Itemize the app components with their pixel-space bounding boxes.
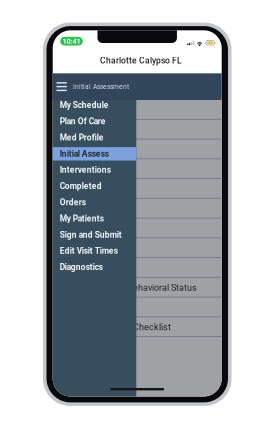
button[interactable]: Completed (53, 178, 136, 194)
button[interactable]: My Patients (53, 210, 136, 227)
button[interactable]: Diagnostics (53, 259, 136, 275)
staticText: Edit Visit Times (60, 246, 118, 256)
staticText: My Schedule (60, 100, 109, 110)
staticText: Initial Assess (60, 149, 109, 159)
staticText: Interventions (60, 165, 111, 175)
staticText: Sign and Submit (60, 230, 122, 240)
button[interactable]: Initial Assess (53, 146, 136, 162)
staticText: Prognosis (65, 223, 106, 234)
staticText: My Patients (60, 214, 104, 223)
button[interactable]: Med Profile (53, 129, 136, 146)
staticText: Vital Signs (65, 105, 107, 115)
button[interactable]: Menu (53, 73, 71, 100)
staticText: Plan Of Care (60, 116, 106, 126)
staticText: 10:41 (62, 37, 80, 45)
button[interactable]: Edit Visit Times (53, 243, 136, 259)
staticText: Sensory Status (65, 144, 125, 155)
button[interactable]: Safety Measures (53, 199, 222, 219)
staticText: Completed (60, 181, 102, 191)
button[interactable]: My Schedule (53, 97, 136, 113)
button[interactable]: Sanitation (53, 238, 222, 258)
button[interactable]: Vital Signs (53, 100, 222, 120)
staticText: Sanitation (65, 243, 105, 253)
staticText: Initial Assessment (73, 83, 129, 90)
button[interactable]: Equipment (53, 258, 222, 278)
staticText: Charlotte Calypso FL (100, 56, 182, 66)
button[interactable]: Sensory Status (53, 139, 222, 159)
staticText: Psychosocial / Behavioral Status (65, 282, 197, 293)
button[interactable]: Interventions (53, 162, 136, 178)
staticText: Diagnostics (60, 262, 103, 272)
button[interactable]: Plan Of Care (53, 113, 136, 129)
button[interactable]: Supervisory Visit Checklist (53, 317, 222, 337)
staticText: Pain Profile (65, 124, 111, 135)
button[interactable]: Psychosocial / Behavioral Status (53, 278, 222, 298)
staticText: Cardiac Status (65, 164, 124, 174)
button[interactable]: Pain Profile (53, 120, 222, 140)
button[interactable]: Prognosis (53, 218, 222, 238)
button[interactable]: Nutrition (53, 179, 222, 199)
staticText: Equipment (65, 263, 108, 273)
button[interactable]: Cardiac Status (53, 159, 222, 179)
staticText: Safety Measures (65, 203, 133, 214)
staticText: Med Profile (60, 133, 104, 142)
button[interactable]: Immunizations (53, 297, 222, 317)
staticText: Supervisory Visit Checklist (65, 322, 171, 332)
button[interactable]: Sign and Submit (53, 227, 136, 243)
button[interactable]: Orders (53, 194, 136, 210)
staticText: Orders (60, 197, 86, 207)
staticText: Nutrition (65, 184, 99, 194)
